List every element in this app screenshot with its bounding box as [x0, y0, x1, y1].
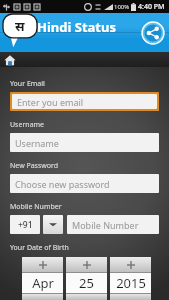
staticText: 100%: [114, 3, 130, 11]
button[interactable]: Apr: [22, 273, 63, 293]
button[interactable]: 2015: [110, 273, 151, 293]
button[interactable]: Increment 2015: [110, 257, 151, 272]
staticText: स: [15, 17, 25, 35]
button[interactable]: 25: [66, 273, 107, 293]
staticText: Username: [10, 120, 45, 130]
staticText: New Password: [10, 161, 59, 171]
button[interactable]: Share: [142, 22, 164, 44]
button[interactable]: Mobile Number: [67, 215, 159, 234]
staticText: 25: [79, 274, 94, 292]
button[interactable]: Decrement 25: [66, 294, 107, 300]
other: App logo: [3, 14, 37, 48]
staticText: Choose new password: [15, 178, 110, 190]
button[interactable]: Username: [10, 133, 159, 152]
button[interactable]: Select country code: [43, 215, 63, 234]
staticText: Your Email: [10, 79, 45, 89]
button[interactable]: Increment Apr: [22, 257, 63, 272]
staticText: 2015: [116, 274, 146, 292]
staticText: Apr: [32, 274, 54, 292]
staticText: Your Date of Birth: [10, 243, 69, 253]
staticText: Hindi Status: [37, 18, 116, 36]
button[interactable]: Choose new password: [10, 174, 159, 193]
button[interactable]: Decrement Apr: [22, 294, 63, 300]
button[interactable]: Enter you email: [12, 94, 157, 109]
staticText: 4:40 PM: [138, 2, 165, 12]
button[interactable]: Home: [4, 54, 16, 66]
staticText: +91: [18, 219, 33, 231]
button[interactable]: +91: [10, 215, 40, 234]
staticText: Mobile Number: [72, 219, 139, 231]
button[interactable]: Increment 25: [66, 257, 107, 272]
staticText: Enter you email: [17, 96, 84, 108]
button[interactable]: Decrement 2015: [110, 294, 151, 300]
staticText: Username: [15, 137, 59, 149]
staticText: Mobile Number: [10, 202, 62, 212]
